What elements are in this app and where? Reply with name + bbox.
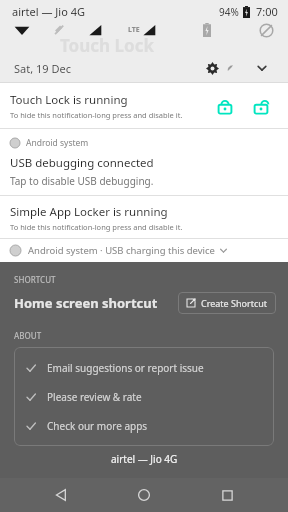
staticText: Check our more apps	[47, 419, 148, 433]
staticText: airtel — Jio 4G	[111, 452, 178, 466]
staticText: Touch Lock	[60, 34, 154, 57]
staticText: Please review & rate	[47, 390, 142, 404]
staticText: Create Shortcut	[201, 297, 268, 309]
staticText: Simple App Locker is running	[10, 204, 168, 220]
button[interactable]: Recent apps	[205, 478, 249, 512]
button[interactable]: Android system · USB charging this devic…	[0, 239, 288, 262]
staticText: USB debugging connected	[10, 155, 154, 171]
button[interactable]: Expand	[250, 56, 274, 80]
staticText: Home screen shortcut	[14, 294, 158, 312]
staticText: 7:00	[256, 4, 278, 19]
staticText: To hide this notification-long press and…	[10, 222, 183, 232]
staticText: Touch Lock is running	[10, 92, 128, 108]
staticText: LTE	[128, 25, 140, 35]
button[interactable]: Please review & rate	[14, 382, 274, 411]
staticText: ABOUT	[14, 330, 42, 341]
staticText: SHORTCUT	[14, 274, 56, 285]
button[interactable]: Unlock screen	[246, 91, 276, 121]
staticText: airtel — Jio 4G	[12, 4, 85, 19]
button[interactable]: Home	[122, 478, 166, 512]
staticText: Sat, 19 Dec	[14, 61, 71, 76]
staticText: To hide this notification-long press and…	[10, 110, 183, 120]
button[interactable]: Email suggestions or report issue	[14, 353, 274, 382]
button[interactable]: Lock screen	[210, 91, 240, 121]
button[interactable]: Android system	[0, 129, 288, 195]
staticText: 94%	[219, 5, 239, 19]
staticText: Android system · USB charging this devic…	[28, 244, 215, 257]
button[interactable]: Settings	[200, 56, 224, 80]
button[interactable]: Check our more apps	[14, 411, 274, 440]
staticText: Tap to disable USB debugging.	[10, 174, 154, 188]
button[interactable]: Create Shortcut	[178, 292, 276, 314]
button[interactable]: Touch Lock is running	[0, 83, 288, 128]
button[interactable]: Back	[39, 478, 83, 512]
button[interactable]: Simple App Locker is running	[0, 196, 288, 238]
staticText: Android system	[26, 137, 89, 149]
staticText: Email suggestions or report issue	[47, 361, 204, 375]
